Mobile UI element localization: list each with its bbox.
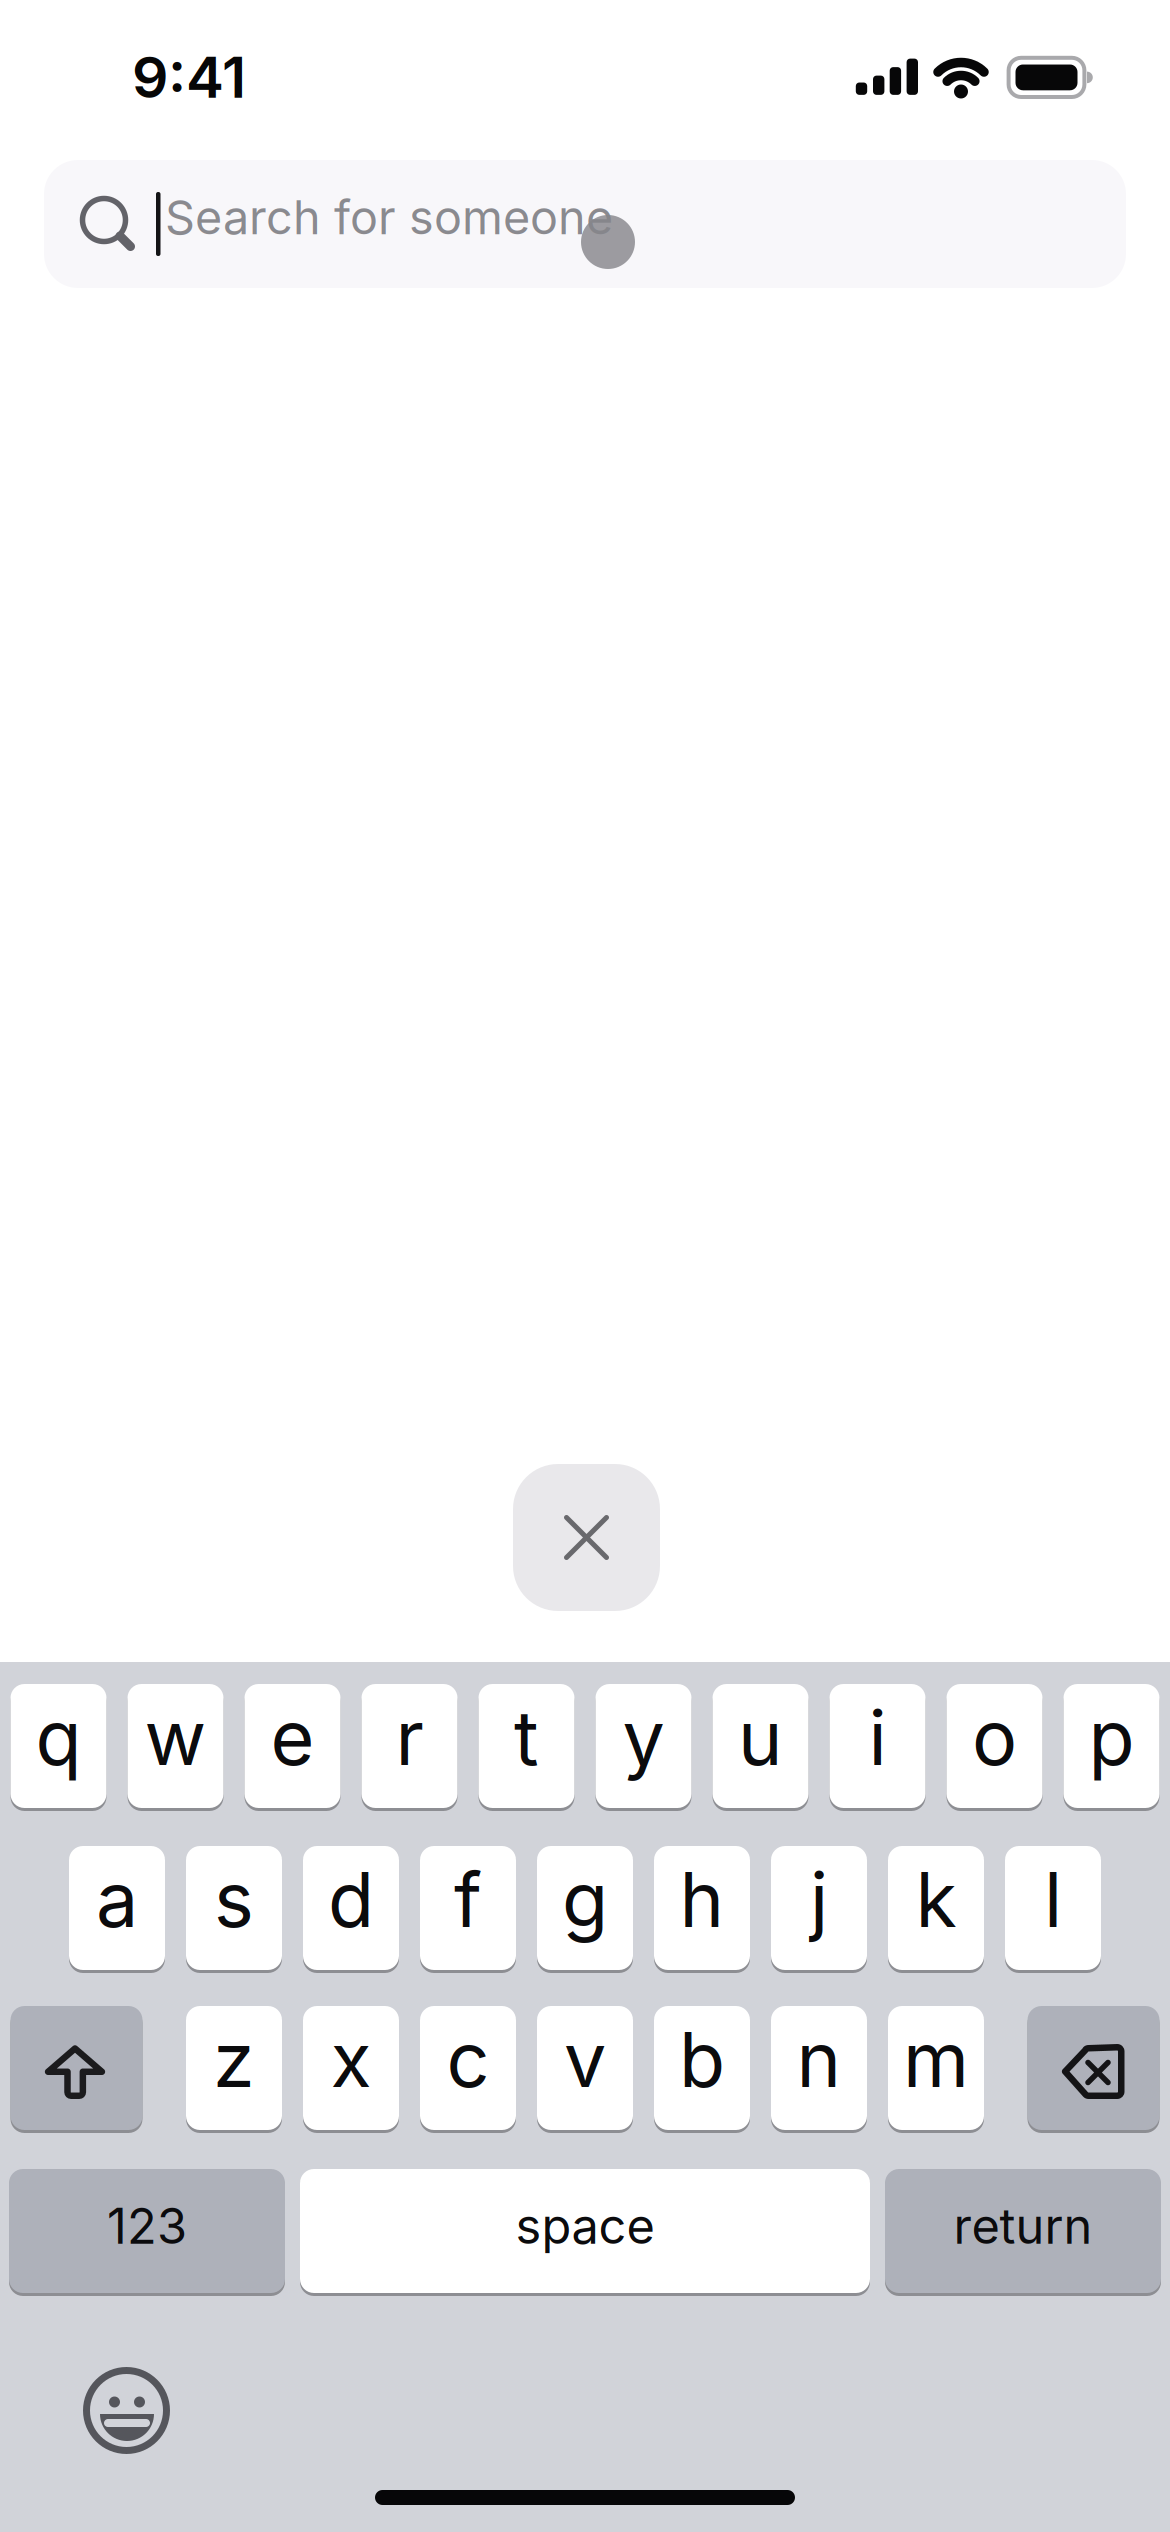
staticText: k bbox=[915, 1854, 956, 1945]
button[interactable]: l bbox=[1005, 1846, 1101, 1970]
button[interactable]: q bbox=[10, 1684, 106, 1808]
staticText: w bbox=[144, 1692, 206, 1783]
staticText: t bbox=[514, 1692, 539, 1783]
button[interactable]: j bbox=[771, 1846, 867, 1970]
button[interactable]: r bbox=[361, 1684, 457, 1808]
staticText: p bbox=[1088, 1692, 1134, 1783]
button[interactable]: Search for someone bbox=[44, 160, 1126, 288]
staticText: Search for someone bbox=[165, 189, 613, 245]
staticText: n bbox=[796, 2014, 841, 2105]
staticText: m bbox=[903, 2014, 969, 2105]
button[interactable]: Close bbox=[513, 1464, 660, 1611]
button[interactable]: Numbers bbox=[9, 2169, 285, 2293]
button[interactable]: Shift bbox=[10, 2006, 142, 2130]
button[interactable]: b bbox=[654, 2006, 750, 2130]
button[interactable]: v bbox=[537, 2006, 633, 2130]
staticText: v bbox=[564, 2014, 606, 2105]
staticText: o bbox=[972, 1692, 1017, 1783]
button[interactable]: d bbox=[303, 1846, 399, 1970]
button[interactable]: u bbox=[712, 1684, 808, 1808]
staticText: y bbox=[622, 1692, 664, 1783]
button[interactable]: s bbox=[186, 1846, 282, 1970]
button[interactable]: p bbox=[1063, 1684, 1159, 1808]
staticText: b bbox=[679, 2014, 725, 2105]
staticText: u bbox=[738, 1692, 783, 1783]
button[interactable]: y bbox=[595, 1684, 691, 1808]
staticText: q bbox=[35, 1692, 81, 1783]
staticText: h bbox=[679, 1854, 724, 1945]
button[interactable]: x bbox=[303, 2006, 399, 2130]
staticText: g bbox=[562, 1854, 608, 1945]
button[interactable]: o bbox=[946, 1684, 1042, 1808]
button[interactable]: f bbox=[420, 1846, 516, 1970]
button[interactable]: Emoji bbox=[82, 2366, 170, 2454]
button[interactable]: e bbox=[244, 1684, 340, 1808]
staticText: 9:41 bbox=[132, 42, 246, 111]
staticText: l bbox=[1044, 1854, 1062, 1945]
staticText: c bbox=[446, 2014, 489, 2105]
staticText: i bbox=[868, 1692, 886, 1783]
staticText: 123 bbox=[107, 2197, 187, 2255]
button[interactable]: g bbox=[537, 1846, 633, 1970]
staticText: j bbox=[810, 1854, 828, 1945]
button[interactable]: a bbox=[69, 1846, 165, 1970]
staticText: s bbox=[214, 1854, 254, 1945]
button[interactable]: space bbox=[300, 2169, 870, 2293]
staticText: e bbox=[270, 1692, 314, 1783]
button[interactable]: Delete bbox=[1027, 2006, 1159, 2130]
button[interactable]: z bbox=[186, 2006, 282, 2130]
staticText: z bbox=[213, 2014, 255, 2105]
staticText: x bbox=[330, 2014, 371, 2105]
button[interactable]: w bbox=[127, 1684, 223, 1808]
button[interactable]: m bbox=[888, 2006, 984, 2130]
button[interactable]: t bbox=[478, 1684, 574, 1808]
staticText: space bbox=[515, 2197, 654, 2255]
button[interactable]: c bbox=[420, 2006, 516, 2130]
staticText: r bbox=[395, 1692, 423, 1783]
button[interactable]: n bbox=[771, 2006, 867, 2130]
staticText: f bbox=[454, 1854, 482, 1945]
button[interactable]: h bbox=[654, 1846, 750, 1970]
staticText: d bbox=[328, 1854, 374, 1945]
staticText: a bbox=[96, 1854, 138, 1945]
button[interactable]: return bbox=[885, 2169, 1161, 2293]
button[interactable]: k bbox=[888, 1846, 984, 1970]
staticText: return bbox=[953, 2197, 1092, 2255]
button[interactable]: i bbox=[829, 1684, 925, 1808]
